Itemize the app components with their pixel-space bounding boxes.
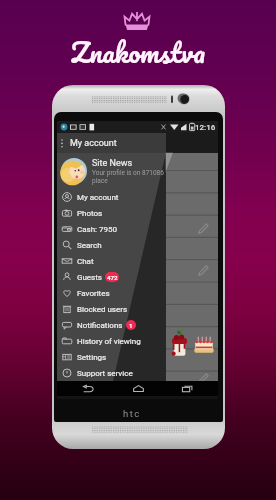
button[interactable]: Settings [57,349,166,365]
staticText: Notifications [77,321,123,330]
button[interactable]: Search [57,237,166,253]
button[interactable]: Support service [57,365,166,381]
button[interactable]: Favorites [57,285,166,301]
staticText: 472 [107,274,118,281]
staticText: Guests [77,273,102,282]
staticText: 12:16 [195,123,216,132]
button[interactable]: Guests [57,269,166,285]
button[interactable]: Photos [57,205,166,221]
staticText: Your profile is on 871086 place [92,169,164,185]
staticText: Photos [77,209,103,218]
staticText: Search [77,241,102,250]
button[interactable]: Recent apps [169,381,205,396]
staticText: Znakomstva [0,29,276,75]
button[interactable]: My account [57,189,166,205]
button[interactable]: Cash: 7950 [57,221,166,237]
staticText: Favorites [77,289,110,298]
other: More options [59,138,65,149]
staticText: My account [77,193,119,202]
staticText: Cash: 7950 [77,225,117,234]
button[interactable]: Notifications [57,317,166,333]
staticText: Site News [92,158,133,169]
button[interactable]: More options [57,133,166,153]
button[interactable]: Site News [57,153,166,189]
staticText: Chat [77,257,94,266]
staticText: Settings [77,353,107,362]
button[interactable]: History of viewing [57,333,166,349]
staticText: My account [70,138,117,149]
staticText: htc [123,408,141,419]
staticText: Support service [77,369,133,378]
staticText: Blocked users [77,305,128,314]
button[interactable]: Home [120,381,156,396]
staticText: History of viewing [77,337,141,346]
button[interactable]: Chat [57,253,166,269]
button[interactable]: Back [70,381,106,396]
button[interactable]: Blocked users [57,301,166,317]
staticText: 1 [129,322,133,329]
